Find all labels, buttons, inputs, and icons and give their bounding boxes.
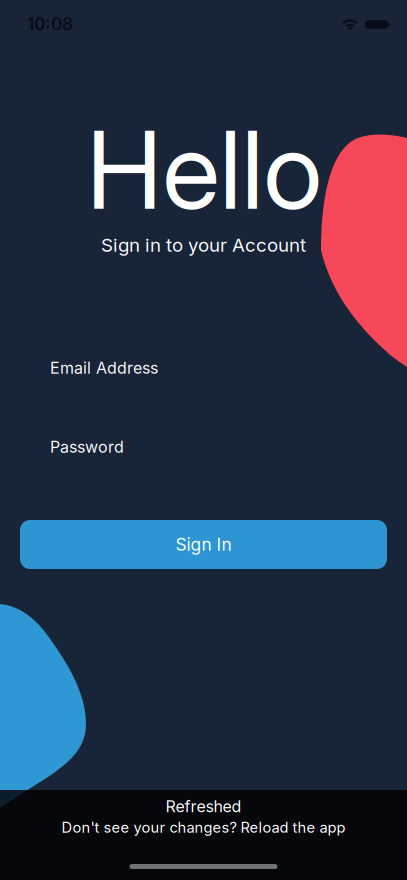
button[interactable]: Email Address (0, 346, 407, 390)
staticText: Email Address (50, 359, 158, 377)
staticText: Sign In (175, 534, 231, 555)
button[interactable]: Sign In (20, 520, 387, 569)
staticText: 10:08 (27, 14, 73, 34)
staticText: Password (50, 438, 124, 456)
staticText: Refreshed (165, 797, 241, 816)
staticText: Sign in to your Account (101, 234, 306, 256)
staticText: Don't see your changes? Reload the app (61, 819, 345, 836)
button[interactable]: Password (0, 425, 407, 469)
staticText: Hello (86, 105, 322, 235)
